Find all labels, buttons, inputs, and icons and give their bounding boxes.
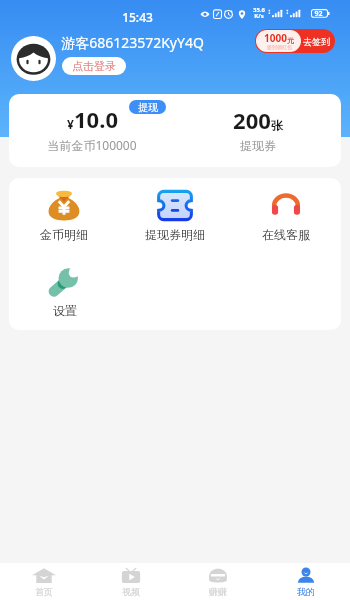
button[interactable]: 在线客服	[230, 178, 341, 254]
staticText: 金币明细	[40, 227, 88, 242]
button[interactable]: 设置	[9, 254, 120, 330]
button[interactable]: 首页	[0, 563, 87, 600]
staticText: 200	[233, 105, 271, 135]
staticText: 去签到	[303, 36, 330, 47]
staticText: 元	[287, 36, 294, 45]
button[interactable]: 视频	[87, 563, 174, 600]
button[interactable]: 我的	[262, 563, 350, 600]
staticText: 提现	[138, 101, 158, 114]
staticText: 设置	[53, 303, 77, 318]
button[interactable]: 点击登录	[62, 57, 126, 75]
button[interactable]: 1000	[255, 29, 335, 53]
staticText: 我的	[297, 586, 315, 597]
staticText: 张	[271, 118, 283, 133]
staticText: 在线客服	[262, 227, 310, 242]
staticText: 10.0	[74, 104, 118, 134]
staticText: 当前金币100000	[47, 137, 137, 153]
button[interactable]: Avatar	[11, 36, 56, 81]
staticText: 35.6	[253, 6, 265, 14]
staticText: 游客686123572KyY4Q	[61, 33, 204, 52]
staticText: 92	[314, 9, 323, 19]
staticText: 首页	[35, 586, 53, 597]
staticText: 签到领红包	[267, 44, 292, 50]
button[interactable]: 金币明细	[9, 178, 119, 254]
staticText: 提现券明细	[145, 227, 205, 242]
staticText: 提现券	[240, 138, 276, 153]
staticText: 点击登录	[72, 59, 116, 73]
staticText: 1000	[264, 31, 287, 45]
staticText: ¥	[67, 116, 74, 132]
button[interactable]: 提现	[129, 100, 166, 114]
staticText: 视频	[122, 586, 140, 597]
staticText: K/s	[254, 12, 264, 20]
button[interactable]: 提现券明细	[119, 178, 230, 254]
button[interactable]: 赚赚	[174, 563, 262, 600]
staticText: 15:43	[122, 9, 153, 25]
staticText: 赚赚	[209, 586, 227, 597]
